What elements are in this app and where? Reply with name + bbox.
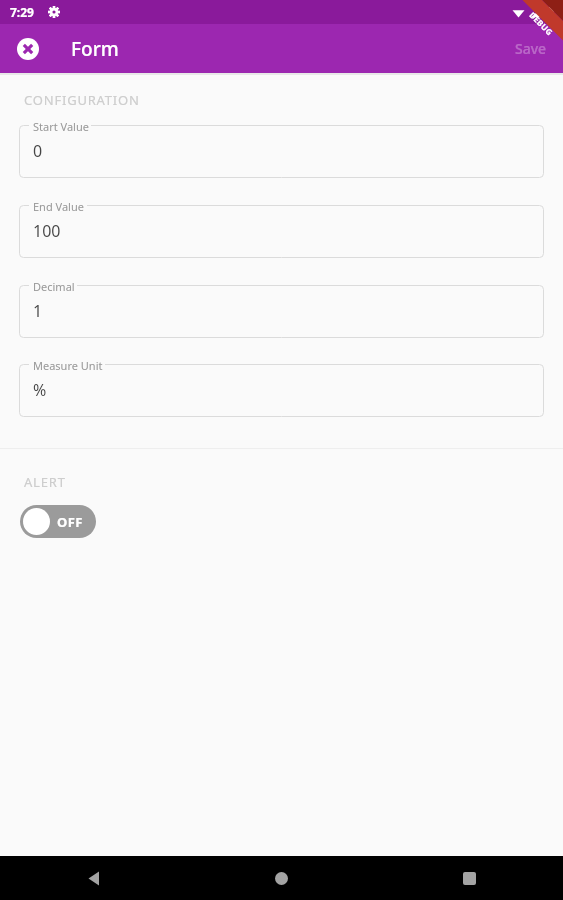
staticText: Measure Unit (33, 358, 103, 373)
button[interactable]: Measure Unit (19, 364, 544, 417)
staticText: DEBUG (527, 9, 556, 38)
staticText: 1 (33, 300, 43, 322)
button[interactable]: Back (72, 856, 116, 900)
staticText: Save (515, 39, 547, 58)
button[interactable]: Recent apps (447, 856, 491, 900)
staticText: 7:29 (10, 4, 34, 20)
staticText: 100 (33, 220, 61, 242)
button[interactable]: Save (505, 31, 557, 66)
staticText: ALERT (24, 473, 66, 491)
staticText: Start Value (33, 119, 89, 134)
button[interactable]: End Value (19, 205, 544, 258)
staticText: Decimal (33, 279, 75, 294)
button[interactable]: Start Value (19, 125, 544, 178)
button[interactable]: Home (259, 856, 303, 900)
staticText: End Value (33, 199, 84, 214)
button[interactable]: Decimal (19, 285, 544, 338)
staticText: Form (71, 36, 119, 62)
staticText: % (33, 379, 47, 401)
button[interactable]: Close (12, 33, 44, 65)
button[interactable]: OFF (20, 505, 96, 538)
staticText: 0 (33, 140, 43, 162)
staticText: OFF (57, 513, 83, 531)
staticText: CONFIGURATION (24, 91, 140, 109)
